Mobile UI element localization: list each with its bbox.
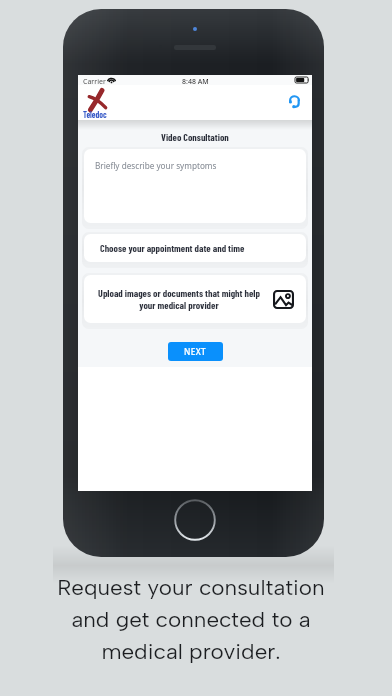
- button[interactable]: NEXT: [168, 342, 223, 361]
- staticText: Briefly describe your symptoms: [95, 160, 217, 171]
- button[interactable]: Upload images or documents that might he…: [84, 275, 306, 323]
- button[interactable]: Choose your appointment date and time: [84, 234, 306, 262]
- staticText: Choose your appointment date and time: [100, 242, 245, 254]
- staticText: Upload images or documents that might he…: [98, 287, 260, 311]
- staticText: NEXT: [184, 346, 207, 357]
- staticText: Teledoc: [83, 109, 107, 119]
- staticText: Carrier: [83, 77, 106, 87]
- staticText: 8:48 AM: [182, 77, 209, 87]
- staticText: Video Consultation: [161, 131, 229, 143]
- button[interactable]: Contact support: [286, 94, 302, 110]
- button[interactable]: Briefly describe your symptoms: [84, 149, 306, 223]
- staticText: Request your consultation and get connec…: [57, 574, 325, 665]
